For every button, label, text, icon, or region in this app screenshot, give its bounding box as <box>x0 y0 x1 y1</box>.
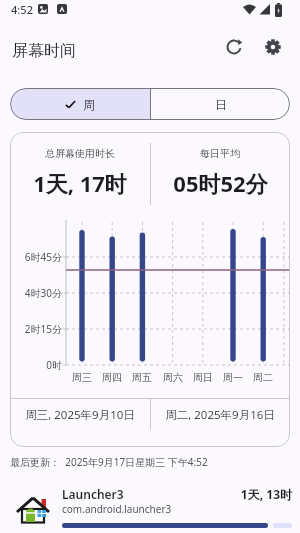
staticText: 6时45分 <box>24 250 62 264</box>
staticText: Launcher3 <box>62 486 124 502</box>
staticText: 2时15分 <box>24 322 62 336</box>
staticText: 周二, 2025年9月16日 <box>165 407 275 423</box>
button[interactable] <box>225 38 243 56</box>
staticText: 屏幕时间 <box>12 41 76 61</box>
staticText: 05时52分 <box>173 168 268 198</box>
staticText: 周一 <box>223 371 243 384</box>
staticText: 周六 <box>163 371 183 384</box>
staticText: 日 <box>215 97 227 112</box>
staticText: 每日平均 <box>200 147 240 160</box>
staticText: 周三 <box>72 371 92 384</box>
staticText: 周三, 2025年9月10日 <box>25 407 135 423</box>
staticText: com.android.launcher3 <box>62 502 172 516</box>
staticText: 1天, 13时 <box>240 486 292 502</box>
staticText: 周二 <box>253 371 273 384</box>
staticText: 周五 <box>132 371 152 384</box>
staticText: 4:52 <box>11 2 33 17</box>
button[interactable] <box>264 38 282 56</box>
staticText: 总屏幕使用时长 <box>45 147 115 160</box>
staticText: 周 <box>83 97 95 112</box>
button[interactable]: 周 <box>10 88 150 120</box>
staticText: 1天, 17时 <box>33 168 127 198</box>
button[interactable]: Launcher3 <box>0 478 300 533</box>
staticText: 0时 <box>46 358 62 372</box>
staticText: 最后更新： 2025年9月17日星期三 下午4:52 <box>10 455 208 469</box>
staticText: 周四 <box>102 371 122 384</box>
staticText: 周日 <box>193 371 213 384</box>
staticText: 4时30分 <box>24 286 62 300</box>
button[interactable]: 日 <box>151 88 290 120</box>
